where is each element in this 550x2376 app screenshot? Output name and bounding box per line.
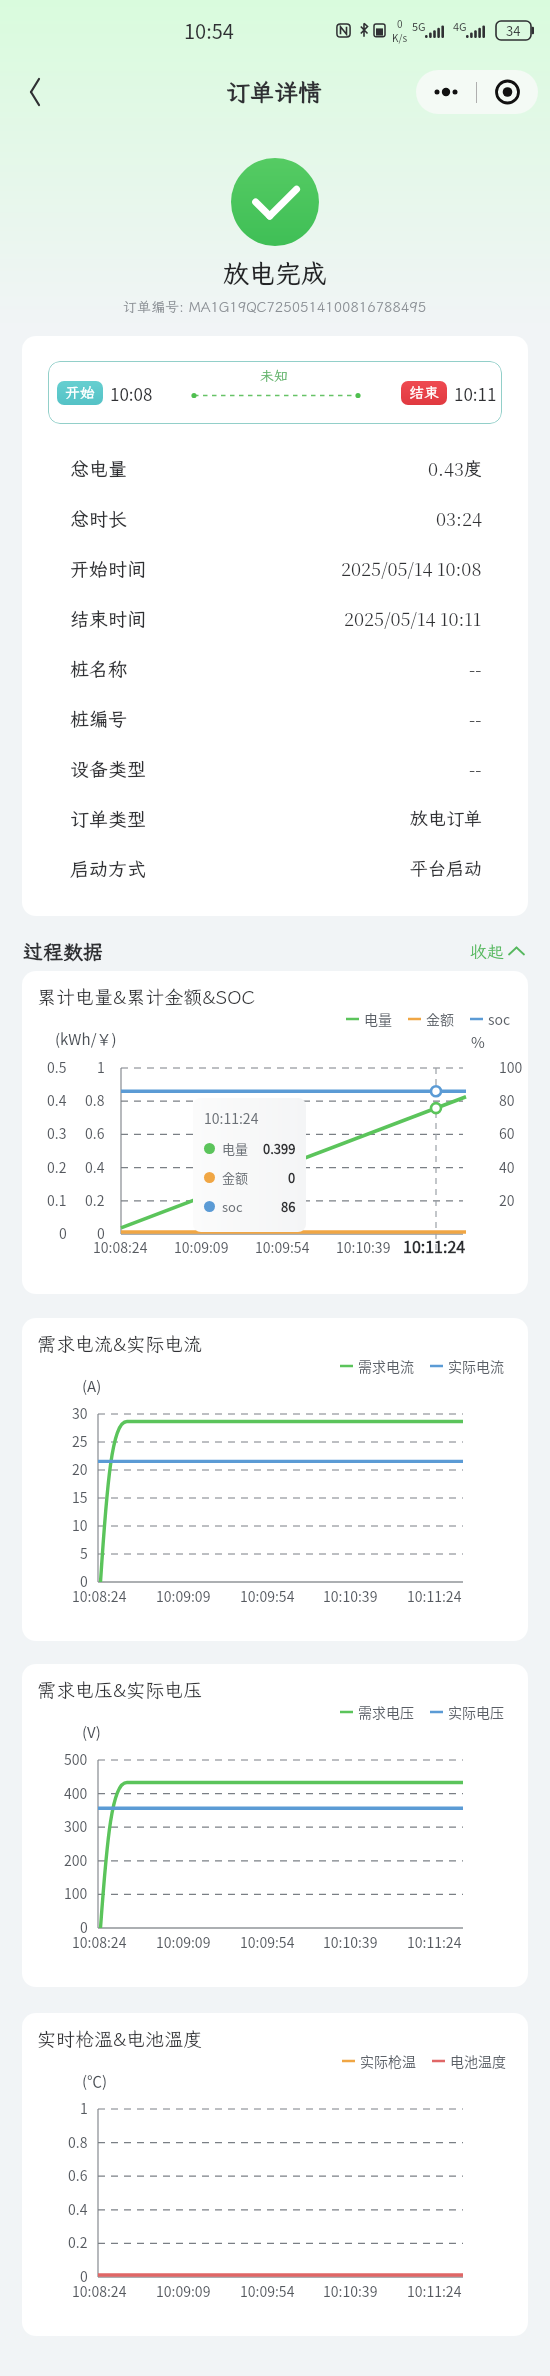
staticText: 10:08:24 (72, 2281, 127, 2301)
staticText: 0.6 (85, 1123, 105, 1143)
staticText: 10:54 (184, 16, 234, 45)
staticText: 80 (499, 1090, 515, 1110)
button[interactable]: 收起 (466, 936, 528, 966)
staticText: 0.2 (47, 1157, 67, 1177)
staticText: 1 (97, 1057, 105, 1077)
staticText: 100 (64, 1883, 88, 1903)
staticText: 电量 (364, 1009, 392, 1029)
staticText: 累计电量&累计金额&SOC (37, 984, 255, 1009)
staticText: 总时长 (70, 506, 128, 531)
staticText: 10:09:09 (156, 2281, 211, 2301)
staticText: (V) (82, 1721, 101, 1743)
staticText: K/s (392, 30, 408, 44)
staticText: 0 (80, 2266, 88, 2286)
staticText: 电量 (222, 1139, 249, 1158)
staticText: 5G (412, 18, 426, 34)
staticText: 4G (453, 18, 467, 34)
staticText: 启动方式 (70, 856, 147, 881)
staticText: -- (469, 755, 482, 781)
staticText: 10:10:39 (323, 1932, 378, 1952)
staticText: -- (469, 705, 482, 731)
staticText: 结束时间 (70, 606, 147, 631)
staticText: (kWh/￥) (55, 1028, 117, 1050)
staticText: 03:24 (436, 505, 482, 531)
staticText: 0 (288, 1168, 296, 1187)
staticText: % (471, 1031, 485, 1053)
staticText: (A) (82, 1375, 102, 1397)
staticText: 金额 (222, 1168, 249, 1187)
staticText: 0 (80, 1571, 88, 1591)
staticText: soc (222, 1197, 243, 1216)
staticText: 60 (499, 1123, 515, 1143)
staticText: 0.1 (47, 1190, 67, 1210)
staticText: 10:09:54 (240, 1586, 295, 1606)
staticText: 实际枪温 (360, 2051, 416, 2071)
staticText: 放电完成 (223, 256, 328, 290)
staticText: 86 (281, 1197, 296, 1216)
staticText: 电池温度 (450, 2051, 506, 2071)
staticText: 2025/05/14 10:11 (344, 605, 482, 631)
button[interactable]: More (416, 70, 476, 114)
staticText: 10:11:24 (204, 1108, 259, 1128)
staticText: 10:08 (110, 381, 153, 406)
staticText: 结束 (409, 383, 440, 403)
staticText: 2025/05/14 10:08 (341, 555, 482, 581)
staticText: 0.4 (68, 2199, 88, 2219)
staticText: 未知 (244, 367, 304, 385)
staticText: 总电量 (70, 456, 128, 481)
staticText: 10:10:39 (323, 1586, 378, 1606)
staticText: 开始时间 (70, 556, 147, 581)
staticText: 20 (72, 1459, 88, 1479)
staticText: 34 (506, 21, 521, 40)
staticText: 收起 (470, 940, 504, 962)
staticText: 过程数据 (23, 938, 103, 964)
staticText: 平台启动 (410, 856, 482, 880)
staticText: 400 (64, 1783, 88, 1803)
staticText: 订单详情 (226, 76, 322, 108)
staticText: 10:09:09 (156, 1932, 211, 1952)
staticText: 0.8 (68, 2132, 88, 2152)
staticText: 20 (499, 1190, 515, 1210)
staticText: 10:11:24 (407, 1586, 462, 1606)
staticText: 0.4 (85, 1157, 105, 1177)
staticText: 实时枪温&电池温度 (37, 2026, 203, 2051)
staticText: 0 (397, 16, 403, 30)
staticText: 度 (464, 456, 482, 480)
staticText: 0 (59, 1223, 67, 1243)
staticText: 10:08:24 (72, 1586, 127, 1606)
staticText: 300 (64, 1816, 88, 1836)
staticText: 10 (72, 1515, 88, 1535)
staticText: 需求电压 (358, 1702, 414, 1722)
staticText: 5 (80, 1543, 88, 1563)
staticText: 桩名称 (70, 656, 128, 681)
button[interactable]: Close (477, 70, 538, 114)
staticText: 设备类型 (70, 756, 147, 781)
staticText: 需求电流&实际电流 (37, 1331, 203, 1356)
staticText: soc (488, 1009, 511, 1029)
staticText: 金额 (426, 1009, 454, 1029)
staticText: 10:11:24 (403, 1234, 466, 1257)
staticText: 10:10:39 (323, 2281, 378, 2301)
staticText: 0.6 (68, 2165, 88, 2185)
staticText: 实际电流 (448, 1356, 504, 1376)
staticText: 10:10:39 (336, 1237, 391, 1257)
staticText: 10:09:54 (255, 1237, 310, 1257)
staticText: 40 (499, 1157, 515, 1177)
staticText: 订单编号: MA1G19QC7250514100816788495 (123, 298, 427, 316)
staticText: 需求电压&实际电压 (37, 1677, 203, 1702)
staticText: 10:08:24 (72, 1932, 127, 1952)
staticText: 0 (97, 1223, 105, 1243)
staticText: 10:09:54 (240, 2281, 295, 2301)
staticText: 10:11 (454, 381, 497, 406)
staticText: 0.5 (47, 1057, 67, 1077)
staticText: 25 (72, 1431, 88, 1451)
staticText: 实际电压 (448, 1702, 504, 1722)
staticText: 1 (80, 2098, 88, 2118)
staticText: 需求电流 (358, 1356, 414, 1376)
staticText: 桩编号 (70, 706, 128, 731)
staticText: 0 (80, 1917, 88, 1937)
staticText: -- (469, 655, 482, 681)
button[interactable]: Back (12, 69, 58, 115)
staticText: 0.2 (85, 1190, 105, 1210)
staticText: 0.4 (47, 1090, 67, 1110)
